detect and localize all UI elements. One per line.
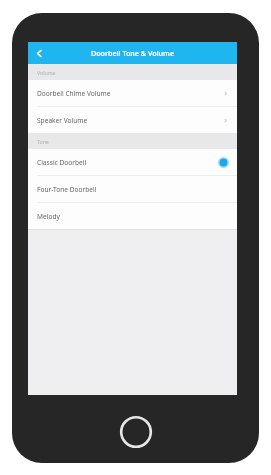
button[interactable]: Back xyxy=(28,42,50,64)
staticText: Classic Doorbell xyxy=(37,158,218,167)
button[interactable]: Four-Tone Doorbell xyxy=(28,176,237,202)
button[interactable]: Speaker Volume xyxy=(28,107,237,133)
staticText: Tone xyxy=(37,138,49,145)
button[interactable]: Doorbell Chime Volume xyxy=(28,80,237,106)
staticText: Four-Tone Doorbell xyxy=(37,185,218,194)
staticText: Volume xyxy=(37,69,56,76)
button[interactable]: Home xyxy=(118,414,154,450)
staticText: Speaker Volume xyxy=(37,116,223,125)
staticText: Doorbell Chime Volume xyxy=(37,89,223,98)
button[interactable]: Classic Doorbell xyxy=(28,149,237,175)
button[interactable]: Melody xyxy=(28,203,237,229)
staticText: Melody xyxy=(37,212,218,221)
staticText: Doorbell Tone & Volume xyxy=(28,48,237,58)
